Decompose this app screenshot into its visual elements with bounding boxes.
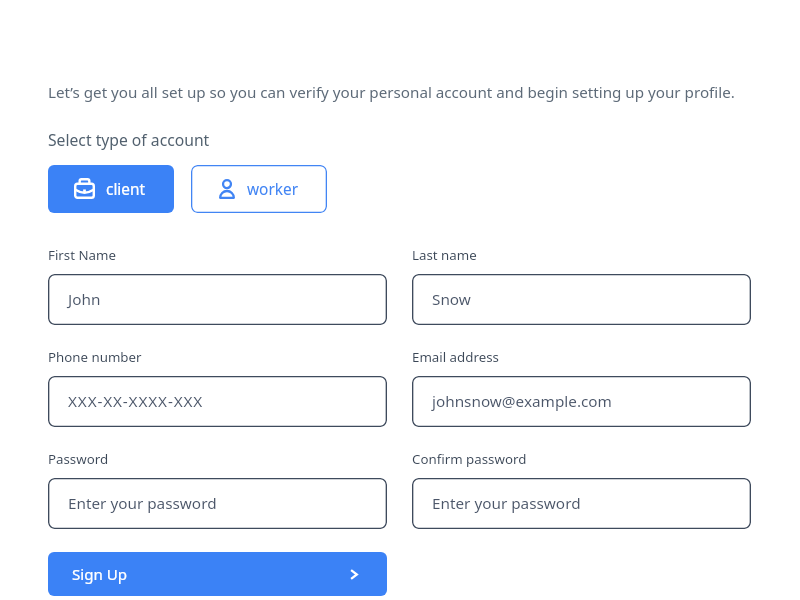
staticText: First Name xyxy=(48,246,116,264)
staticText: Password xyxy=(48,450,109,468)
staticText: Last name xyxy=(412,246,477,264)
other: Worker xyxy=(219,179,235,199)
button[interactable]: XXX-XX-XXXX-XXX xyxy=(48,376,387,427)
staticText: John xyxy=(68,289,101,310)
button[interactable]: Snow xyxy=(412,274,751,325)
button[interactable]: Sign Up xyxy=(48,552,387,596)
staticText: XXX-XX-XXXX-XXX xyxy=(68,391,204,412)
button[interactable]: Client xyxy=(48,165,174,213)
button[interactable]: John xyxy=(48,274,387,325)
staticText: Enter your password xyxy=(432,493,581,514)
staticText: johnsnow@example.com xyxy=(432,391,612,412)
staticText: Sign Up xyxy=(72,564,128,585)
staticText: Phone number xyxy=(48,348,142,366)
button[interactable]: Worker xyxy=(191,165,327,213)
staticText: Email address xyxy=(412,348,499,366)
staticText: client xyxy=(106,179,146,200)
button[interactable]: Enter your password xyxy=(48,478,387,529)
staticText: Let’s get you all set up so you can veri… xyxy=(48,82,735,103)
staticText: Snow xyxy=(432,289,471,310)
other: Continue xyxy=(350,569,358,580)
staticText: Confirm password xyxy=(412,450,527,468)
staticText: Enter your password xyxy=(68,493,217,514)
staticText: worker xyxy=(247,179,299,200)
staticText: Select type of account xyxy=(48,129,210,150)
button[interactable]: johnsnow@example.com xyxy=(412,376,751,427)
other: Client xyxy=(74,178,95,199)
button[interactable]: Enter your password xyxy=(412,478,751,529)
